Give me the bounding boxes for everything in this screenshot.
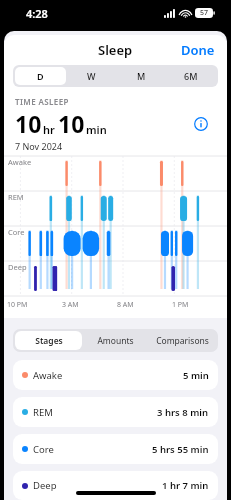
staticText: Comparisons (156, 335, 209, 347)
button[interactable]: Done (169, 36, 227, 64)
staticText: Deep (8, 262, 27, 272)
button[interactable]: Amounts (82, 331, 149, 350)
button[interactable]: Stages (15, 331, 82, 350)
staticText: Amounts (97, 335, 134, 347)
staticText: 7 Nov 2024 (15, 140, 63, 152)
button[interactable]: M (116, 67, 166, 85)
staticText: 5 hrs 55 min (152, 443, 209, 456)
staticText: 3 AM (62, 300, 79, 310)
staticText: M (137, 70, 146, 82)
staticText: 10 (58, 108, 85, 139)
button[interactable]: Information (186, 109, 216, 139)
staticText: Sleep (98, 41, 133, 59)
staticText: 1 hr 7 min (162, 479, 209, 492)
staticText: Core (8, 227, 25, 237)
staticText: 4:28 (26, 6, 48, 21)
staticText: 57 (200, 8, 209, 18)
staticText: D (37, 70, 44, 82)
staticText: min (86, 122, 107, 137)
button[interactable]: Comparisons (149, 331, 216, 350)
staticText: REM (8, 192, 24, 202)
button[interactable]: REM (13, 397, 218, 427)
staticText: 10 PM (7, 300, 28, 310)
button[interactable]: 6M (166, 67, 216, 85)
staticText: Awake (33, 369, 63, 382)
staticText: 6M (184, 70, 198, 82)
staticText: 1 PM (172, 300, 189, 310)
staticText: Stages (35, 335, 63, 347)
staticText: hr (43, 122, 55, 137)
staticText: Deep (33, 479, 57, 492)
staticText: TIME ASLEEP (15, 96, 69, 107)
staticText: 10 (15, 108, 42, 139)
staticText: 3 hrs 8 min (157, 406, 209, 419)
staticText: 8 AM (117, 300, 134, 310)
staticText: Done (181, 41, 215, 59)
staticText: Awake (8, 157, 32, 167)
staticText: W (87, 70, 96, 82)
button[interactable]: D (15, 67, 66, 85)
staticText: 5 min (183, 369, 209, 382)
staticText: Core (33, 443, 54, 456)
button[interactable]: Deep (13, 471, 218, 500)
button[interactable]: W (66, 67, 116, 85)
button[interactable]: Awake (13, 360, 218, 390)
staticText: REM (33, 406, 53, 419)
button[interactable]: Core (13, 434, 218, 464)
